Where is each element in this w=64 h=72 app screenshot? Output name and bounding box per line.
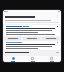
button[interactable]: More options [5,14,59,19]
button[interactable] [42,37,59,40]
button[interactable] [23,37,40,40]
button[interactable]: Profile [42,56,61,62]
button[interactable]: More options [56,15,59,18]
button[interactable] [5,51,59,54]
button[interactable]: Search [23,56,42,62]
button[interactable] [4,25,60,36]
button[interactable] [4,41,60,50]
button[interactable] [5,37,21,40]
button[interactable]: Home [3,56,23,62]
